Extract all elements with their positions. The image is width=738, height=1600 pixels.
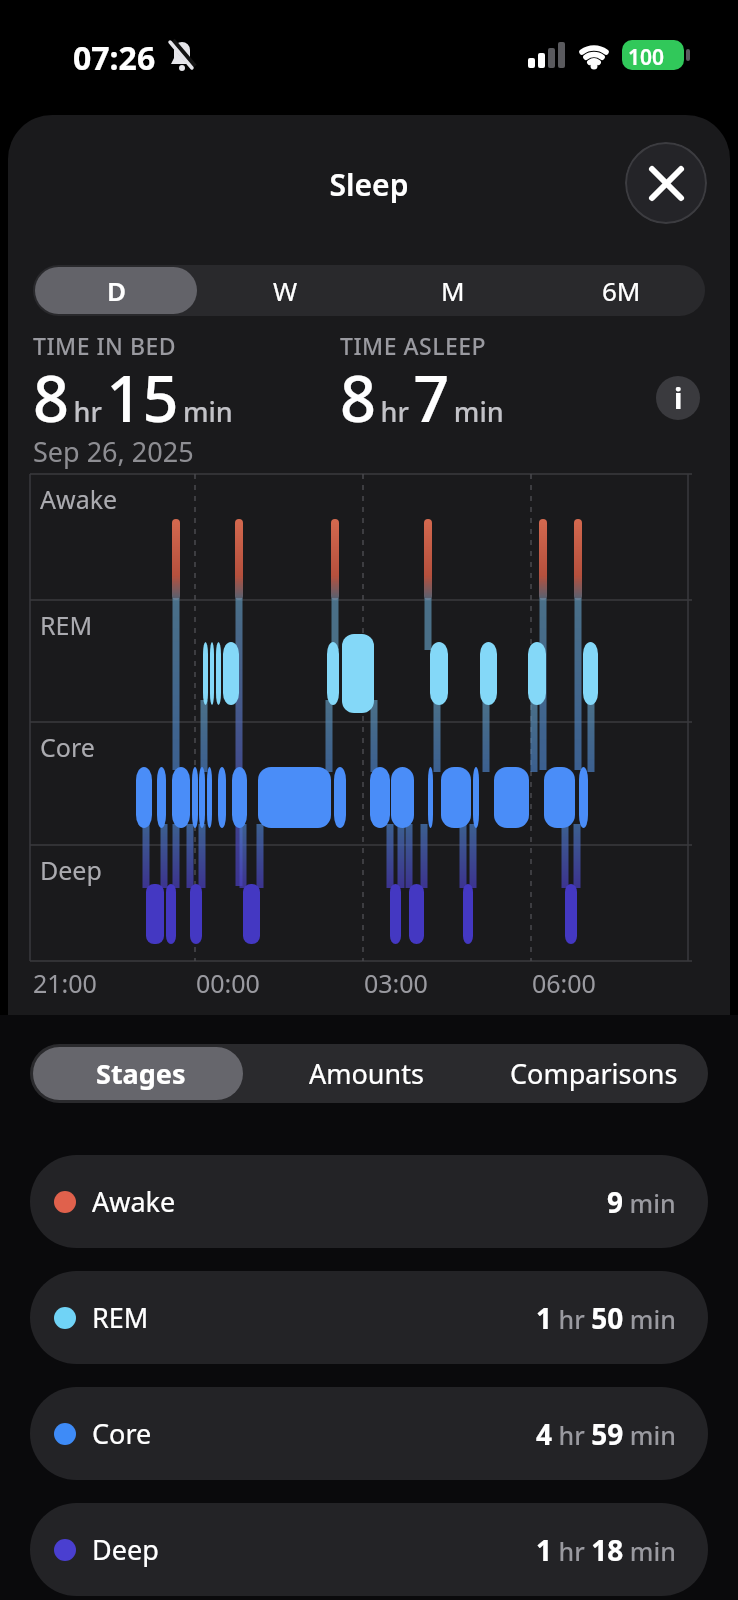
button[interactable]: Awake xyxy=(30,1155,708,1248)
staticText: 07:26 xyxy=(73,36,156,80)
button[interactable]: Deep xyxy=(30,1503,708,1596)
staticText: 4 hr 59 min xyxy=(536,1415,676,1453)
button[interactable]: Stages xyxy=(30,1044,252,1103)
staticText: 8 hr 15 min xyxy=(33,355,233,441)
staticText: 00:00 xyxy=(196,966,260,1000)
staticText: Sep 26, 2025 xyxy=(33,433,194,470)
staticText: Core xyxy=(92,1415,152,1452)
staticText: Deep xyxy=(92,1531,159,1568)
button[interactable]: Core xyxy=(30,1387,708,1480)
button[interactable]: W xyxy=(201,265,369,316)
staticText: 8 hr 7 min xyxy=(340,355,504,441)
staticText: D xyxy=(107,273,127,308)
staticText: Stages xyxy=(96,1055,186,1092)
button[interactable]: Comparisons xyxy=(480,1044,708,1103)
staticText: Awake xyxy=(40,482,118,516)
staticText: W xyxy=(273,273,298,308)
staticText: Amounts xyxy=(309,1055,424,1092)
staticText: i xyxy=(674,379,683,417)
staticText: M xyxy=(441,273,465,308)
button[interactable]: REM xyxy=(30,1271,708,1364)
staticText: REM xyxy=(40,608,93,642)
staticText: Comparisons xyxy=(510,1055,678,1092)
staticText: 1 hr 50 min xyxy=(536,1299,676,1337)
button[interactable]: D xyxy=(33,265,201,316)
button[interactable]: 6M xyxy=(537,265,705,316)
staticText: 1 hr 18 min xyxy=(536,1531,676,1569)
staticText: Sleep xyxy=(0,164,738,205)
staticText: 9 min xyxy=(607,1183,676,1221)
staticText: Deep xyxy=(40,853,102,887)
staticText: 21:00 xyxy=(33,966,97,1000)
staticText: 100 xyxy=(628,43,665,72)
staticText: TIME ASLEEP xyxy=(340,330,487,361)
staticText: Awake xyxy=(92,1183,176,1220)
button[interactable]: i xyxy=(656,376,700,420)
button[interactable]: M xyxy=(369,265,537,316)
staticText: Core xyxy=(40,730,95,764)
staticText: 06:00 xyxy=(532,966,596,1000)
button[interactable]: Amounts xyxy=(252,1044,480,1103)
button[interactable] xyxy=(625,142,707,224)
staticText: TIME IN BED xyxy=(33,330,177,361)
staticText: 6M xyxy=(602,273,641,308)
staticText: REM xyxy=(92,1299,149,1336)
staticText: 03:00 xyxy=(364,966,428,1000)
